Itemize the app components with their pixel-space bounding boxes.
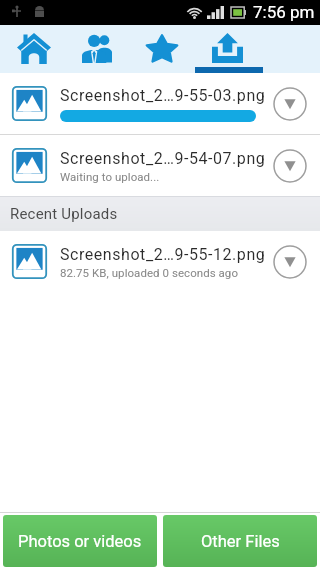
staticText: 7:56 pm [253, 2, 315, 22]
staticText: Photos or videos [18, 532, 142, 551]
button[interactable]: Screenshot_2…9-54-07.png [0, 135, 320, 196]
staticText: Recent Uploads [10, 205, 118, 223]
staticText: Screenshot_2…9-55-12.png [60, 245, 266, 264]
staticText: 82.75 KB, uploaded 0 seconds ago [60, 266, 238, 279]
button[interactable]: More options [272, 86, 307, 121]
button[interactable]: Screenshot_2…9-55-12.png [0, 231, 320, 292]
button[interactable]: More options [272, 148, 307, 183]
button[interactable]: More options [272, 244, 307, 279]
button[interactable]: Friends [64, 25, 130, 73]
button[interactable]: Other Files [163, 515, 317, 567]
button[interactable]: Photos or videos [3, 515, 157, 567]
staticText: Screenshot_2…9-54-07.png [60, 149, 266, 168]
button[interactable]: Home [0, 25, 67, 73]
staticText: Screenshot_2…9-55-03.png [60, 86, 266, 105]
staticText: Waiting to upload... [60, 170, 160, 183]
staticText: Other Files [201, 532, 280, 551]
button[interactable]: Screenshot_2…9-55-03.png [0, 73, 320, 134]
button[interactable]: Favourites [130, 25, 193, 73]
button[interactable]: Uploads [195, 25, 263, 73]
